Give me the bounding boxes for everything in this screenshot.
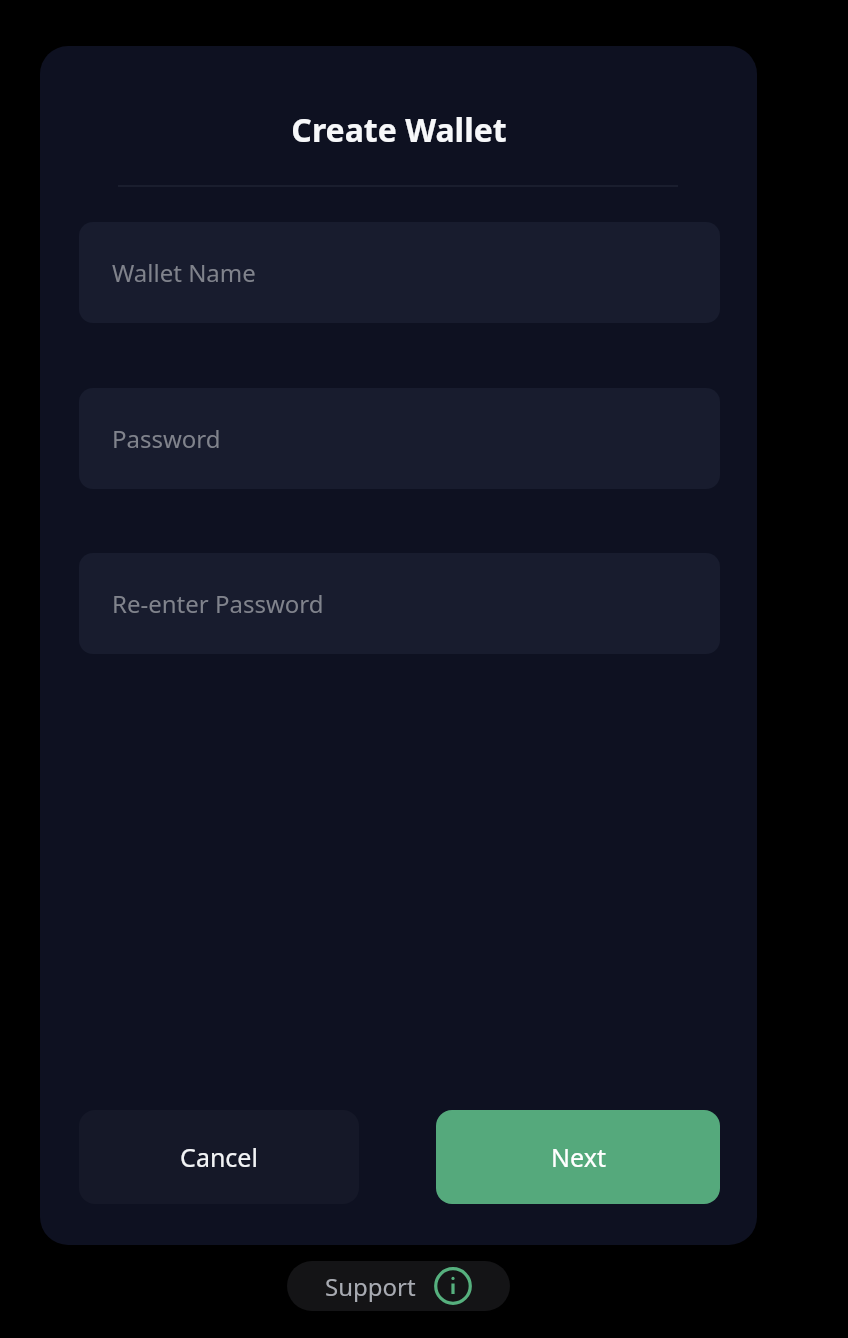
button[interactable]: Cancel [79,1110,359,1204]
button[interactable]: Password [79,388,720,489]
staticText: Cancel [180,1140,258,1174]
staticText: Next [551,1140,606,1174]
staticText: Password [112,422,221,455]
button[interactable]: Support [287,1261,510,1311]
button[interactable]: Next [436,1110,720,1204]
staticText: Re-enter Password [112,587,324,620]
staticText: Support [325,1270,416,1303]
button[interactable]: Re-enter Password [79,553,720,654]
button[interactable]: Wallet Name [79,222,720,323]
staticText: Wallet Name [112,256,256,289]
other: Support information [434,1267,472,1305]
staticText: Create Wallet [291,108,507,152]
